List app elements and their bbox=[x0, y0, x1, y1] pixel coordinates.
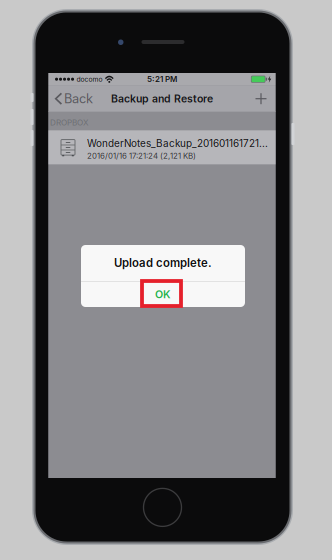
staticText: Backup and Restore bbox=[111, 92, 213, 105]
staticText: docomo bbox=[77, 75, 103, 83]
staticText: 5:21 PM bbox=[147, 74, 177, 84]
staticText: DROPBOX bbox=[50, 117, 89, 127]
staticText: Upload complete. bbox=[114, 256, 212, 270]
staticText: Back bbox=[64, 91, 93, 106]
staticText: OK bbox=[155, 288, 171, 301]
button[interactable]: WonderNotes_Backup_201601161721... bbox=[48, 130, 275, 164]
button[interactable]: OK bbox=[81, 282, 245, 307]
staticText: 2016/01/16 17:21:24 (2,121 KB) bbox=[87, 151, 196, 161]
button[interactable]: Back bbox=[48, 85, 97, 112]
button[interactable]: Add bbox=[250, 85, 275, 112]
staticText: WonderNotes_Backup_201601161721... bbox=[87, 137, 268, 149]
